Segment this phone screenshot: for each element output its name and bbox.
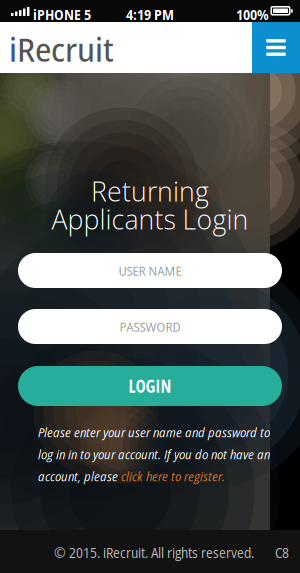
button[interactable]: click here to register. — [121, 467, 225, 485]
staticText: PASSWORD — [119, 317, 180, 336]
staticText: 4:19 PM — [126, 5, 174, 24]
staticText: Applicants Login — [51, 201, 248, 237]
staticText: iPHONE 5 — [33, 5, 91, 24]
staticText: USER NAME — [118, 261, 181, 280]
staticText: Returning — [91, 173, 209, 209]
button[interactable]: PASSWORD — [18, 309, 282, 344]
staticText: 100% — [236, 5, 269, 24]
button[interactable]: Menu — [252, 22, 300, 73]
button[interactable]: LOGIN — [18, 366, 282, 406]
button[interactable]: USER NAME — [18, 253, 282, 288]
staticText: log in in to your account. If you do not… — [38, 445, 270, 463]
staticText: click here to register. — [121, 467, 225, 485]
staticText: i — [9, 26, 17, 71]
staticText: C8 — [275, 543, 289, 562]
staticText: Recruit — [17, 26, 114, 71]
staticText: Please enter your user name and password… — [38, 423, 270, 441]
staticText: © 2015. iRecruit. All rights reserved. — [54, 543, 254, 562]
staticText: LOGIN — [128, 374, 171, 398]
staticText: account, please — [38, 467, 121, 485]
